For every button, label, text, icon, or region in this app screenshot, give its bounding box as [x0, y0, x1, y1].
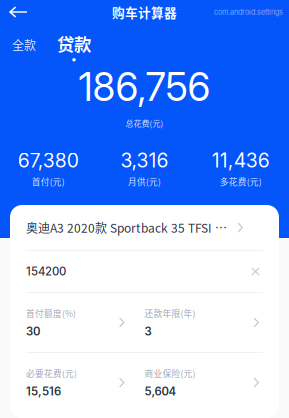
staticText: 多花费(元) — [220, 175, 262, 188]
staticText: 首付(元) — [32, 175, 65, 188]
button[interactable]: 奥迪A3 2020款 Sportback 35 TFSI 进… — [26, 205, 263, 250]
staticText: 还款年限(年) — [144, 307, 195, 319]
staticText: 全款 — [12, 36, 36, 53]
button[interactable]: 商业保险(元) — [144, 353, 263, 412]
button[interactable]: 首付额度(%) — [26, 293, 144, 352]
button[interactable]: 必要花费(元) — [26, 353, 144, 412]
button[interactable]: Back — [0, 2, 37, 22]
staticText: com.android.settings — [214, 8, 283, 16]
button[interactable]: 贷款 — [36, 31, 91, 61]
staticText: 奥迪A3 2020款 Sportback 35 TFSI 进… — [26, 219, 231, 236]
staticText: 首付额度(%) — [26, 307, 76, 319]
button[interactable]: 还款年限(年) — [144, 293, 263, 352]
staticText: 总花费(元) — [125, 117, 163, 129]
button[interactable]: Clear — [246, 262, 265, 281]
staticText: 30 — [26, 324, 40, 338]
staticText: 15,516 — [26, 384, 61, 398]
staticText: 154200 — [26, 265, 66, 278]
staticText: 186,756 — [78, 63, 210, 110]
staticText: 5,604 — [144, 384, 176, 398]
staticText: 3 — [144, 324, 151, 338]
staticText: 67,380 — [18, 149, 79, 172]
staticText: 11,436 — [212, 149, 270, 172]
button[interactable]: 全款 — [12, 31, 36, 53]
staticText: 商业保险(元) — [144, 367, 195, 379]
staticText: 贷款 — [57, 31, 91, 56]
staticText: 必要花费(元) — [26, 367, 77, 379]
staticText: 月供(元) — [128, 175, 161, 188]
staticText: 3,316 — [120, 149, 168, 172]
staticText: 购车计算器 — [112, 3, 177, 21]
